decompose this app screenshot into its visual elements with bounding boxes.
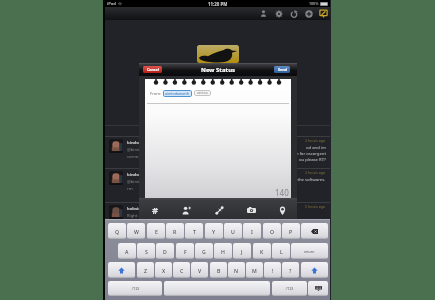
staticText: D	[163, 248, 167, 255]
button[interactable]	[108, 262, 135, 278]
button[interactable]: bindow	[105, 168, 330, 200]
button[interactable]: Hashtag	[146, 200, 164, 220]
button[interactable]	[308, 281, 328, 296]
staticText: bobsta	[127, 206, 142, 212]
button[interactable]: Y	[205, 223, 223, 239]
button[interactable]: H	[214, 243, 232, 259]
button[interactable]: I	[243, 223, 261, 239]
button[interactable]: P	[282, 223, 300, 239]
button[interactable]: Refresh	[288, 8, 299, 19]
staticText: 11:20 PM	[208, 1, 228, 7]
staticText: O	[270, 228, 275, 235]
button[interactable]: aimtodoworth	[163, 90, 192, 97]
staticText: B	[217, 267, 221, 274]
staticText: e the softwares.	[294, 177, 326, 183]
staticText: W	[134, 228, 139, 235]
staticText: Z	[144, 267, 147, 274]
button[interactable]: K	[253, 243, 271, 259]
button[interactable]	[301, 223, 328, 239]
button[interactable]: Camera	[242, 200, 260, 220]
staticText: Right -	[127, 213, 140, 219]
button[interactable]: N	[228, 262, 245, 278]
button[interactable]: S	[137, 243, 155, 259]
button[interactable]: !	[264, 262, 281, 278]
button[interactable]: .?123	[272, 281, 307, 296]
button[interactable]	[301, 262, 328, 278]
staticText: F	[184, 248, 187, 255]
staticText: iPad	[107, 1, 117, 7]
button[interactable]: Mention	[177, 200, 195, 220]
staticText: cornng	[127, 154, 142, 160]
button[interactable]: Send	[274, 66, 290, 73]
button[interactable]: V	[191, 262, 208, 278]
button[interactable]: Compose	[318, 8, 329, 19]
staticText: S	[145, 248, 148, 255]
staticText: .?123	[131, 286, 140, 291]
button[interactable]: T	[185, 223, 203, 239]
button[interactable]: return	[291, 243, 328, 259]
staticText: aimtodoworth	[165, 91, 190, 96]
staticText: New Status	[201, 66, 236, 74]
button[interactable]: .?123	[108, 281, 162, 296]
button[interactable]: R	[166, 223, 184, 239]
staticText: n far oscargent	[296, 151, 326, 157]
button[interactable]: C	[173, 262, 190, 278]
button[interactable]: Settings	[273, 8, 284, 19]
button[interactable]: G	[195, 243, 213, 259]
staticText: 2 hours ago	[305, 170, 326, 175]
button[interactable]: Attach link	[210, 200, 228, 220]
button[interactable]: W	[127, 223, 145, 239]
button[interactable]: U	[224, 223, 242, 239]
staticText: U	[231, 228, 235, 235]
button[interactable]	[164, 281, 270, 296]
button[interactable]: aimtoo	[194, 90, 211, 96]
button[interactable]: B	[210, 262, 227, 278]
staticText: E	[155, 228, 158, 235]
button[interactable]: J	[233, 243, 251, 259]
staticText: @bind	[127, 147, 140, 153]
staticText: Cancel	[147, 67, 159, 72]
staticText: H	[221, 248, 225, 255]
staticText: M	[252, 267, 257, 274]
staticText: 5 hours ago	[305, 204, 326, 209]
staticText: bindow	[127, 172, 143, 178]
button[interactable]: Z	[137, 262, 154, 278]
button[interactable]: O	[263, 223, 281, 239]
staticText: K	[260, 248, 264, 255]
button[interactable]: ?	[282, 262, 299, 278]
button[interactable]: M	[246, 262, 263, 278]
staticText: Q	[115, 228, 120, 235]
staticText: aimtoo	[197, 91, 208, 95]
staticText: I	[251, 228, 253, 235]
button[interactable]: Cancel	[143, 66, 162, 73]
staticText: 100%	[309, 1, 319, 6]
staticText: V	[198, 267, 202, 274]
staticText: !	[272, 267, 274, 274]
button[interactable]: E	[147, 223, 165, 239]
button[interactable]: L	[272, 243, 290, 259]
button[interactable]: Q	[108, 223, 126, 239]
button[interactable]: bobsta	[105, 202, 330, 234]
button[interactable]: D	[156, 243, 174, 259]
staticText: 2 hours ago	[305, 138, 326, 143]
staticText: R	[173, 228, 177, 235]
staticText: od and im	[306, 145, 326, 151]
staticText: G	[202, 248, 206, 255]
button[interactable]: Location	[273, 200, 291, 220]
button[interactable]: X	[155, 262, 172, 278]
staticText: From:	[150, 91, 162, 97]
staticText: T	[193, 228, 196, 235]
staticText: ou please RT?	[299, 157, 326, 163]
button[interactable]: F	[176, 243, 194, 259]
staticText: P	[289, 228, 293, 235]
button[interactable]: bindow	[105, 136, 330, 168]
staticText: Send	[278, 67, 287, 72]
staticText: tamon	[127, 220, 140, 226]
staticText: bindow	[127, 140, 143, 146]
staticText: N	[234, 267, 239, 274]
button[interactable]: Account	[258, 8, 269, 19]
button[interactable]: A	[118, 243, 136, 259]
staticText: A	[125, 248, 129, 255]
staticText: return	[304, 249, 315, 254]
button[interactable]: Add	[303, 8, 314, 19]
